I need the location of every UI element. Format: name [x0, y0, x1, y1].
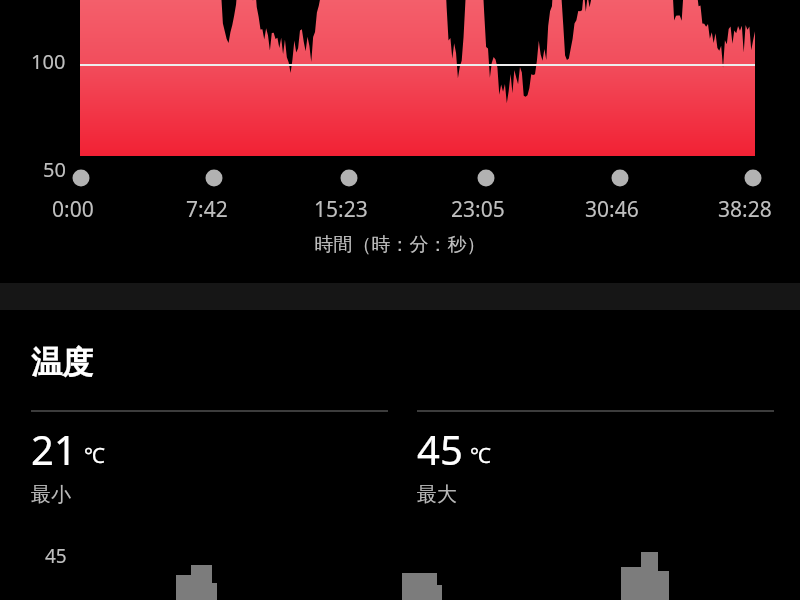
staticText: ℃ — [470, 441, 491, 470]
staticText: 100 — [31, 48, 66, 75]
staticText: 23:05 — [451, 195, 505, 224]
staticText: 50 — [43, 156, 66, 183]
staticText: 最小 — [31, 482, 71, 507]
button[interactable]: 21 — [31, 410, 388, 507]
staticText: 時間（時：分：秒） — [0, 233, 800, 257]
button[interactable]: 45 — [417, 410, 774, 507]
staticText: 15:23 — [314, 195, 368, 224]
staticText: 0:00 — [52, 195, 94, 224]
staticText: 45 — [417, 422, 463, 476]
staticText: 最大 — [417, 482, 457, 507]
staticText: 7:42 — [186, 195, 228, 224]
staticText: 温度 — [31, 343, 93, 382]
staticText: 38:28 — [718, 195, 772, 224]
staticText: ℃ — [84, 441, 105, 470]
staticText: 21 — [31, 422, 77, 476]
staticText: 30:46 — [585, 195, 639, 224]
staticText: 45 — [45, 543, 67, 569]
